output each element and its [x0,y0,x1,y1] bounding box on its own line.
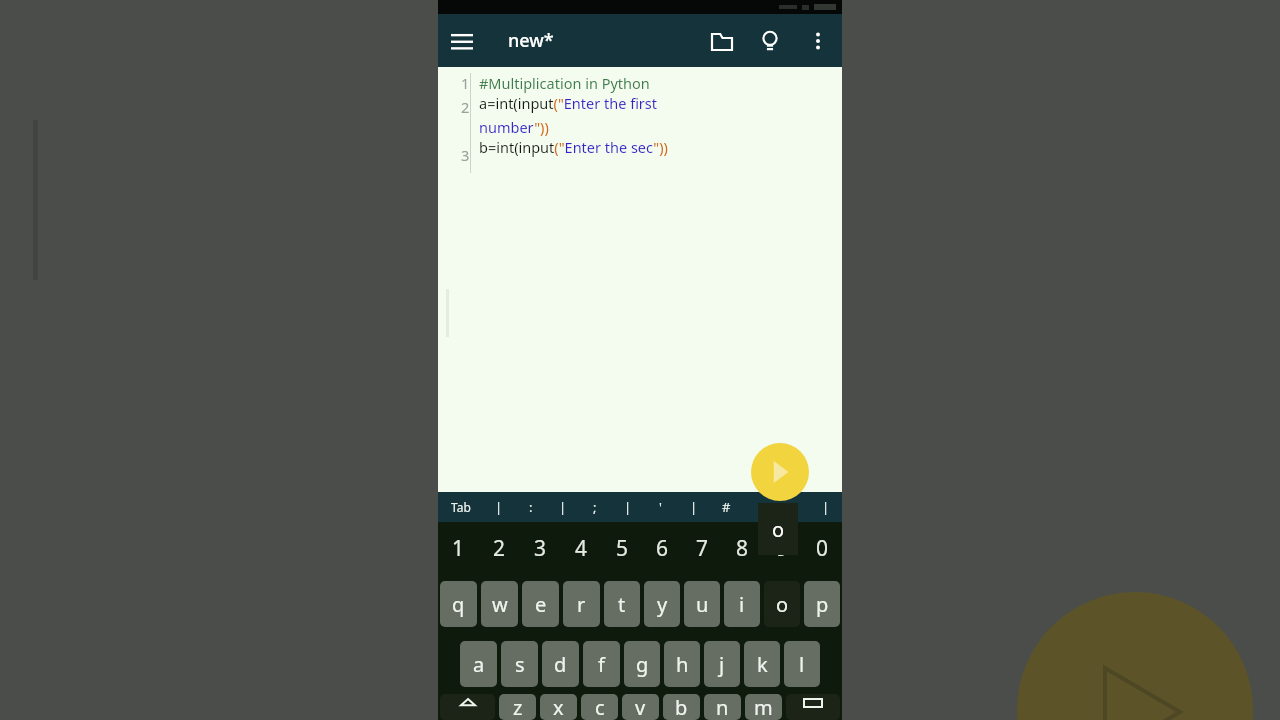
staticText: b=int(input("Enter the sec")) [479,137,729,157]
staticText: 0 [816,534,829,563]
button[interactable]: z [499,694,536,720]
button[interactable]: d [542,641,579,687]
staticText: z [513,694,523,720]
staticText: | [559,498,567,516]
staticText: n [716,694,729,720]
staticText: r [577,591,586,618]
button[interactable]: | [809,492,842,522]
button[interactable]: g [624,641,660,687]
button[interactable]: i [724,581,760,627]
staticText: : [529,498,533,516]
button[interactable]: j [704,641,740,687]
button[interactable]: | [547,492,579,522]
button[interactable]: h [664,641,700,687]
staticText: o [772,516,785,543]
staticText: 6 [656,534,669,563]
button[interactable]: u [684,581,720,627]
button[interactable]: | [677,492,710,522]
button[interactable]: t [604,581,640,627]
button[interactable]: 0 [802,522,842,574]
staticText: 5 [616,534,629,563]
button[interactable]: 3 [520,522,561,574]
staticText: 8 [736,534,749,563]
button[interactable]: 5 [602,522,642,574]
staticText: i [739,591,745,618]
button[interactable]: 2 [479,522,520,574]
button[interactable]: : [515,492,547,522]
button[interactable]: ' [644,492,677,522]
button[interactable]: l [784,641,820,687]
button[interactable]: ; [579,492,611,522]
button[interactable]: 8 [722,522,762,574]
button[interactable]: Navigation menu [438,17,486,65]
button[interactable]: y [644,581,680,627]
button[interactable]: k [744,641,780,687]
staticText: Tab [451,499,471,515]
staticText: o [776,591,789,618]
button[interactable]: Shift [440,694,495,720]
staticText: f [598,651,605,678]
button[interactable]: | [483,492,515,522]
button[interactable]: r [563,581,600,627]
staticText: h [676,651,689,678]
button[interactable]: 9 [762,522,802,574]
staticText: k [757,651,768,678]
staticText: d [554,651,567,678]
button[interactable]: More options [794,17,842,65]
button[interactable]: a [460,641,497,687]
button[interactable]: n [704,694,741,720]
staticText: e [535,591,547,618]
staticText: 9 [776,534,789,563]
staticText: m [754,694,773,720]
button[interactable]: | [611,492,644,522]
button[interactable]: x [540,694,577,720]
staticText: ( [791,498,795,516]
staticText: g [636,651,649,678]
staticText: # [722,498,731,516]
button[interactable]: p [804,581,840,627]
button[interactable]: 6 [642,522,682,574]
button[interactable]: f [583,641,620,687]
button[interactable]: e [522,581,559,627]
staticText: a=int(input("Enter the first number")) [479,93,729,137]
staticText: x [553,694,564,720]
staticText: 1 [452,534,465,563]
staticText: | [624,498,632,516]
button[interactable]: Tab [438,492,483,522]
button[interactable]: 4 [561,522,602,574]
staticText: 4 [575,534,588,563]
staticText: ; [593,498,597,516]
staticText: | [495,498,503,516]
button[interactable]: ( [776,492,809,522]
button[interactable]: 1 [438,522,479,574]
staticText: | [690,498,698,516]
staticText: j [719,651,725,678]
button[interactable]: Open file [698,17,746,65]
button[interactable]: # [710,492,743,522]
staticText: 2 [461,97,470,117]
button[interactable]: Hints [746,17,794,65]
staticText: 3 [534,534,547,563]
staticText: c [595,694,605,720]
button[interactable]: c [581,694,618,720]
button[interactable]: q [440,581,477,627]
staticText: 3 [461,145,470,165]
staticText: u [696,591,709,618]
button[interactable]: b [663,694,700,720]
button[interactable]: Run [751,443,809,501]
button[interactable]: m [745,694,782,720]
staticText: v [635,694,646,720]
button[interactable] [743,492,776,522]
button[interactable]: v [622,694,659,720]
staticText: t [618,591,626,618]
button[interactable]: w [481,581,518,627]
staticText: q [452,591,465,618]
button[interactable]: s [501,641,538,687]
staticText: 7 [696,534,709,563]
button[interactable]: 7 [682,522,722,574]
staticText: ' [659,498,662,516]
button[interactable]: o [764,581,800,627]
staticText: w [492,591,508,618]
button[interactable]: Backspace [786,694,840,720]
staticText: 2 [493,534,506,563]
